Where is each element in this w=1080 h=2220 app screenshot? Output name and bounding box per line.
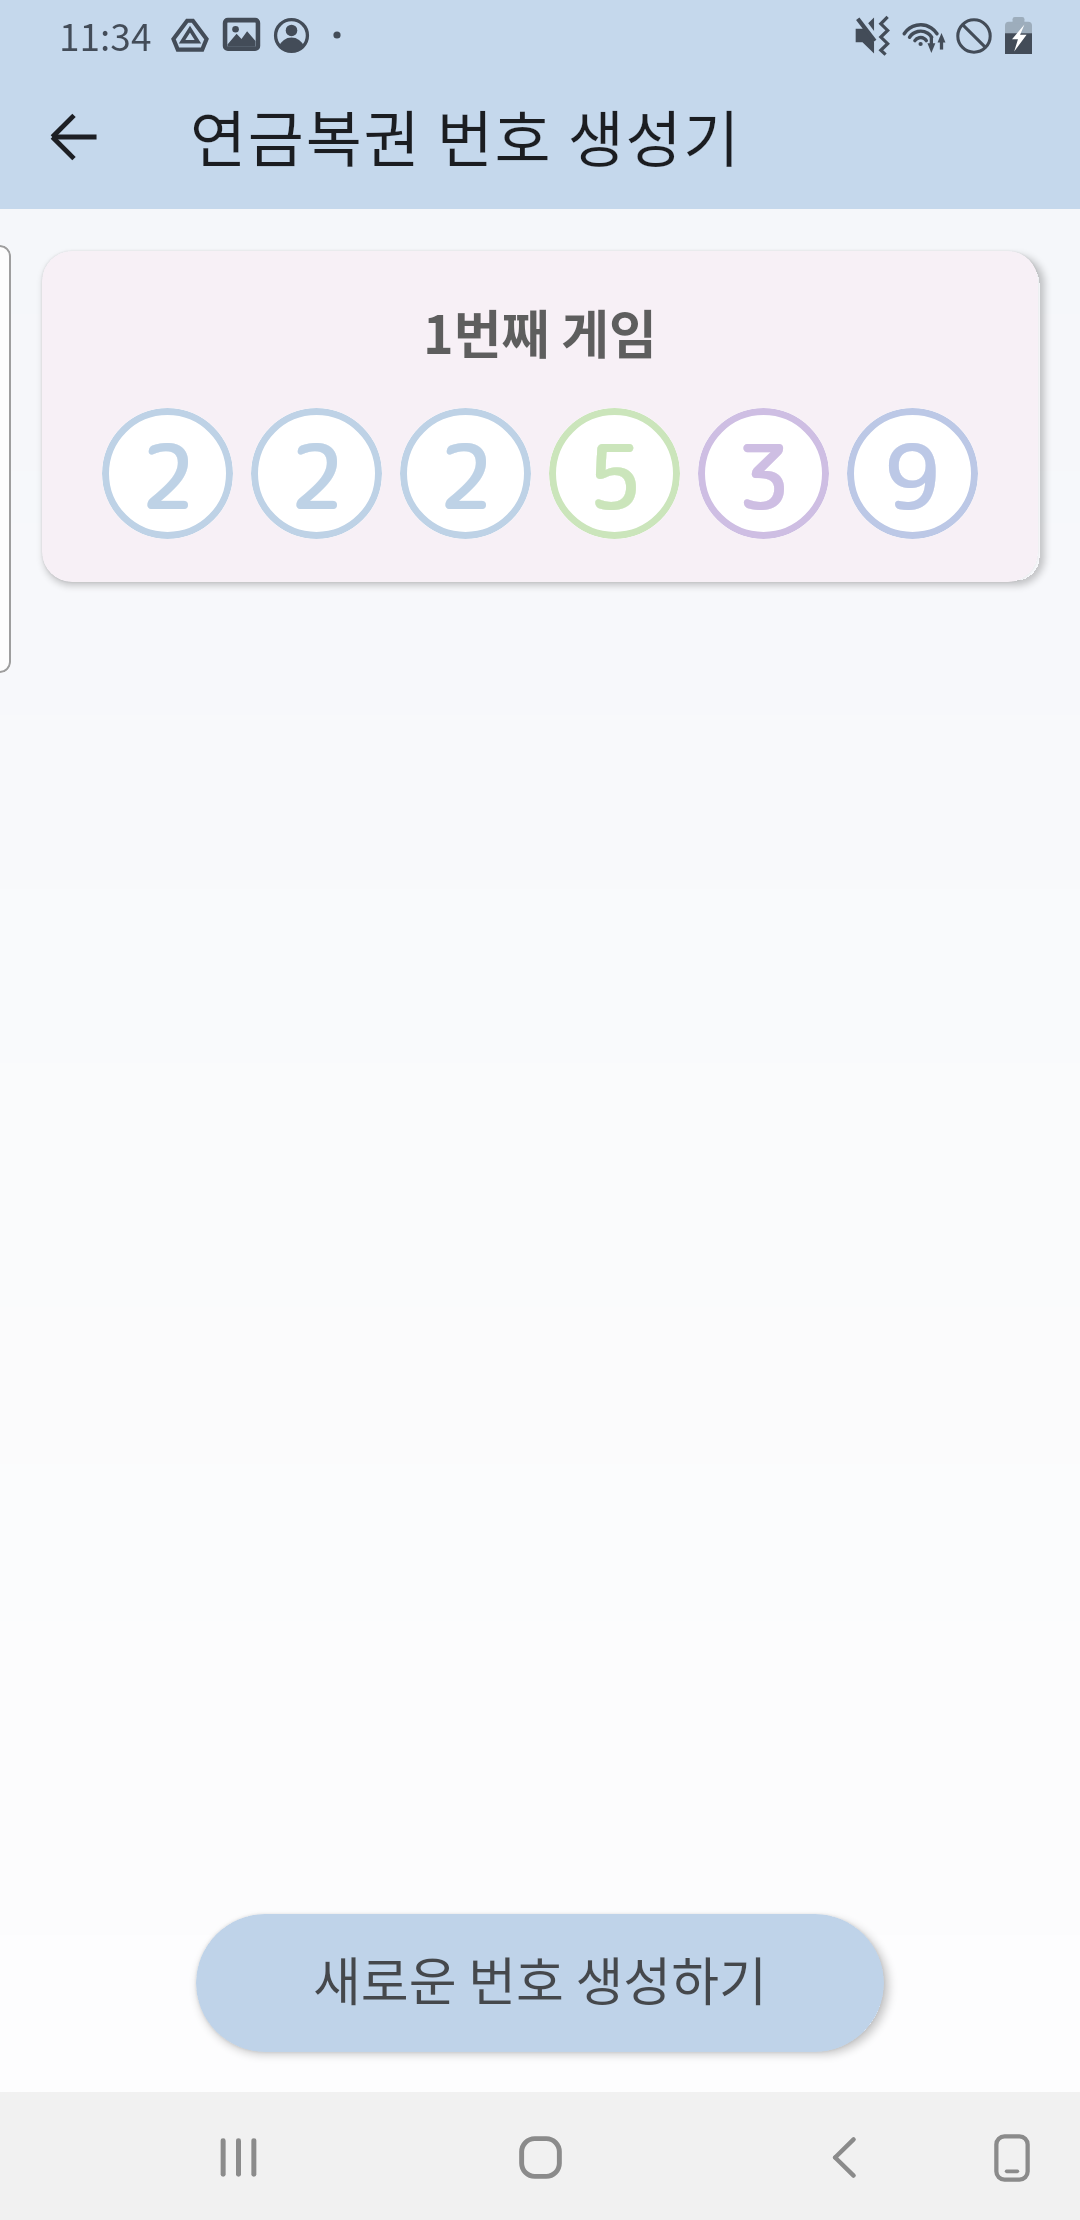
button[interactable]: Home bbox=[490, 2107, 591, 2208]
staticText: 새로운 번호 생성하기 bbox=[313, 1941, 767, 2016]
staticText: 2 bbox=[289, 414, 345, 537]
button[interactable]: 새로운 번호 생성하기 bbox=[196, 1914, 884, 2052]
staticText: 5 bbox=[587, 414, 643, 537]
button[interactable]: Back bbox=[793, 2107, 894, 2208]
button[interactable]: Back bbox=[18, 81, 130, 193]
staticText: 연금복권 번호 생성기 bbox=[190, 91, 742, 179]
staticText: 3 bbox=[736, 414, 792, 537]
staticText: 1번째 게임 bbox=[423, 294, 657, 369]
button[interactable]: Recent apps bbox=[188, 2107, 289, 2208]
staticText: 2 bbox=[438, 414, 494, 537]
staticText: 9 bbox=[885, 414, 941, 537]
staticText: 2 bbox=[140, 414, 196, 537]
button[interactable]: Device bbox=[961, 2107, 1062, 2208]
staticText: 11:34 bbox=[59, 8, 152, 62]
